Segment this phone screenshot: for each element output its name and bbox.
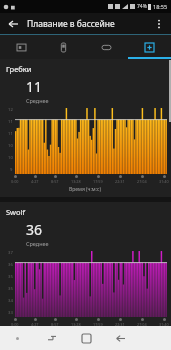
staticText: 11 — [8, 131, 13, 137]
staticText: 10 — [8, 155, 13, 161]
staticText: 27:04 — [137, 322, 147, 326]
staticText: 34 — [8, 298, 13, 304]
staticText: 12 — [8, 107, 13, 113]
staticText: 13:28 — [71, 179, 81, 184]
staticText: 36 — [26, 220, 43, 239]
button[interactable]: Назад — [4, 15, 21, 32]
button[interactable]: Круги — [85, 35, 128, 59]
staticText: 0:00 — [11, 322, 19, 326]
staticText: 18:55 — [153, 3, 168, 10]
staticText: 17:59 — [93, 179, 103, 184]
staticText: 17:59 — [93, 322, 103, 326]
staticText: 8:57 — [51, 322, 59, 326]
staticText: 33 — [8, 310, 13, 316]
button[interactable]: Главный экран — [69, 326, 103, 350]
staticText: Плавание в бассейне — [27, 18, 115, 30]
staticText: 13:28 — [71, 322, 81, 326]
staticText: 37 — [8, 250, 13, 256]
button[interactable]: Ещё — [150, 15, 167, 32]
staticText: 31:40 — [159, 179, 169, 184]
staticText: Время (ч:м:с) — [69, 186, 102, 193]
staticText: 9 — [10, 167, 13, 173]
staticText: 27:04 — [137, 179, 147, 184]
staticText: 22:31 — [115, 322, 125, 326]
staticText: 8:57 — [51, 179, 59, 184]
staticText: 35 — [8, 286, 13, 292]
staticText: 10 — [8, 143, 13, 149]
button[interactable]: Назад — [103, 326, 137, 350]
button[interactable]: Графики — [128, 35, 171, 59]
staticText: 74% — [137, 3, 147, 10]
staticText: 31:40 — [159, 322, 169, 326]
staticText: Среднее — [26, 97, 49, 104]
button[interactable]: Недавние приложения — [35, 326, 69, 350]
button[interactable]: Обзор — [0, 35, 42, 59]
staticText: 36 — [8, 262, 13, 268]
staticText: Гребки — [6, 64, 32, 74]
button[interactable]: Данные — [42, 35, 85, 59]
staticText: Среднее — [26, 240, 49, 247]
staticText: 35 — [8, 274, 13, 280]
staticText: 0:00 — [11, 179, 19, 184]
staticText: Swolf — [6, 207, 26, 217]
staticText: 4:27 — [31, 179, 39, 184]
button[interactable]: Меню — [0, 326, 35, 350]
staticText: 11 — [8, 119, 13, 125]
staticText: 11 — [26, 77, 43, 96]
staticText: 22:31 — [115, 179, 125, 184]
staticText: 4:27 — [31, 322, 39, 326]
